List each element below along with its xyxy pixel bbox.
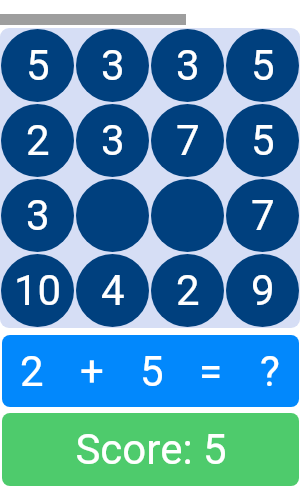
- button[interactable]: 3: [1, 179, 74, 252]
- staticText: 4: [101, 266, 125, 315]
- staticText: 2: [26, 116, 50, 165]
- button[interactable]: [151, 179, 224, 252]
- button[interactable]: 2: [1, 104, 74, 177]
- staticText: 5: [251, 116, 275, 165]
- button[interactable]: 7: [151, 104, 224, 177]
- staticText: +: [80, 347, 104, 396]
- staticText: 5: [251, 41, 275, 90]
- button[interactable]: 2: [151, 254, 224, 327]
- button[interactable]: 2: [2, 335, 299, 407]
- staticText: 3: [101, 116, 125, 165]
- button[interactable]: 10: [1, 254, 74, 327]
- staticText: =: [199, 347, 223, 396]
- button[interactable]: Score: 5: [2, 413, 299, 486]
- button[interactable]: 3: [76, 29, 149, 102]
- button[interactable]: 5: [226, 104, 299, 177]
- staticText: 7: [176, 116, 200, 165]
- button[interactable]: 5: [1, 29, 74, 102]
- button[interactable]: 7: [226, 179, 299, 252]
- staticText: 7: [251, 191, 275, 240]
- staticText: 3: [176, 41, 200, 90]
- staticText: 3: [26, 191, 50, 240]
- staticText: 3: [101, 41, 125, 90]
- staticText: ?: [260, 347, 280, 396]
- button[interactable]: 3: [76, 104, 149, 177]
- button[interactable]: 9: [226, 254, 299, 327]
- button[interactable]: 3: [151, 29, 224, 102]
- button[interactable]: 4: [76, 254, 149, 327]
- button[interactable]: 5: [226, 29, 299, 102]
- staticText: 2: [20, 347, 44, 396]
- staticText: 5: [26, 41, 50, 90]
- staticText: 2: [176, 266, 200, 315]
- staticText: 5: [140, 347, 164, 396]
- staticText: 10: [14, 266, 62, 315]
- staticText: 9: [251, 266, 275, 315]
- staticText: Score: 5: [75, 425, 227, 474]
- button[interactable]: [76, 179, 149, 252]
